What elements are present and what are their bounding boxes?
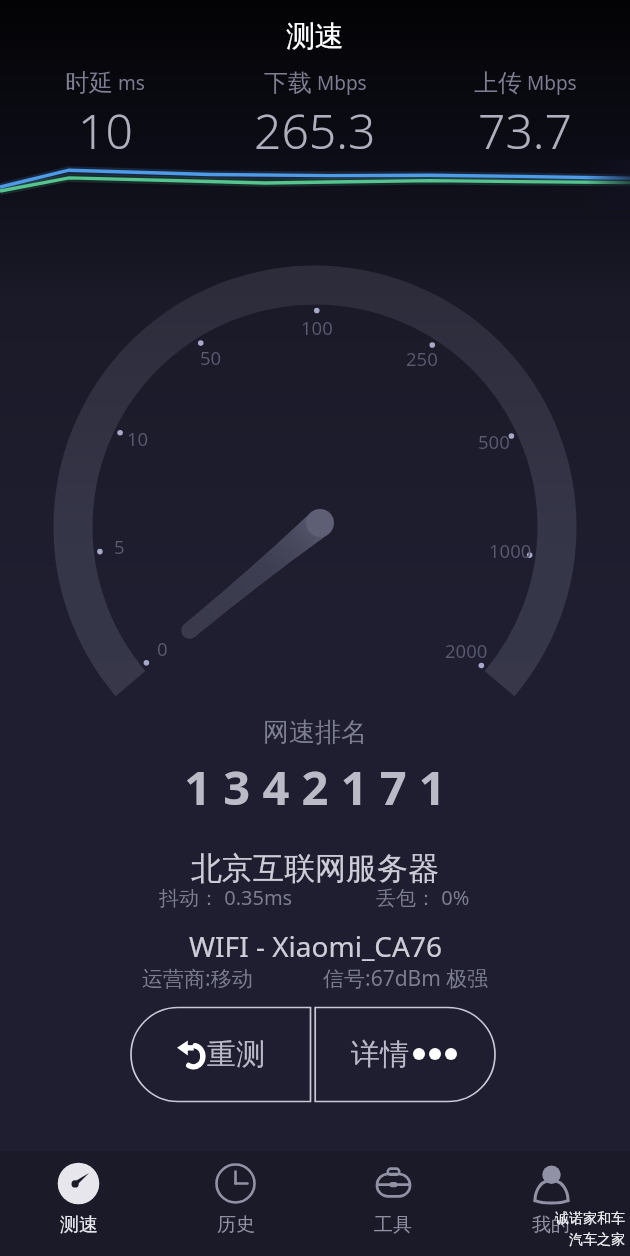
staticText: 下载 (264, 68, 312, 98)
staticText: 1000 (489, 538, 532, 563)
other: 历史 (214, 1162, 257, 1205)
staticText: 10 (78, 98, 133, 163)
staticText: 信号:67dBm 极强 (323, 964, 489, 993)
staticText: 我的 (532, 1213, 570, 1237)
staticText: 0 (157, 636, 168, 661)
staticText: 详情 (351, 1036, 409, 1073)
staticText: 250 (406, 346, 438, 371)
button[interactable]: 我的 (472, 1151, 630, 1256)
staticText: 汽车之家 (569, 1231, 625, 1249)
staticText: 5 (114, 534, 125, 559)
staticText: 上传 (474, 68, 522, 98)
staticText: 2000 (445, 638, 488, 663)
staticText: 测速 (286, 18, 344, 55)
staticText: 50 (200, 345, 222, 370)
other: 我的 (530, 1162, 573, 1205)
staticText: 历史 (217, 1213, 255, 1237)
staticText: 10 (127, 426, 149, 451)
staticText: Mbps (317, 70, 367, 96)
other: 工具 (372, 1162, 415, 1205)
staticText: 丢包： 0% (376, 884, 470, 911)
staticText: 时延 (65, 68, 113, 98)
staticText: 北京互联网服务器 (191, 849, 439, 888)
staticText: 抖动： 0.35ms (159, 884, 293, 911)
staticText: 网速排名 (263, 716, 367, 749)
staticText: 工具 (374, 1213, 412, 1237)
button[interactable]: 历史 (157, 1151, 314, 1256)
staticText: 重测 (207, 1036, 265, 1073)
other: 测速 (57, 1162, 100, 1205)
button[interactable]: 测速 (0, 1151, 157, 1256)
staticText: 测速 (60, 1213, 98, 1237)
staticText: 265.3 (254, 98, 376, 163)
staticText: 1 3 4 2 1 7 1 (184, 755, 446, 819)
staticText: ms (118, 70, 145, 96)
staticText: 运营商:移动 (142, 964, 253, 993)
staticText: WIFI - Xiaomi_CA76 (189, 927, 442, 965)
button[interactable]: 重测 (131, 1006, 311, 1102)
staticText: 500 (478, 429, 510, 454)
staticText: 诚诺家和车 (555, 1210, 625, 1228)
staticText: 73.7 (478, 98, 572, 163)
staticText: Mbps (527, 70, 577, 96)
button[interactable]: 详情 (315, 1006, 495, 1102)
staticText: 100 (301, 315, 333, 340)
button[interactable]: 工具 (314, 1151, 472, 1256)
